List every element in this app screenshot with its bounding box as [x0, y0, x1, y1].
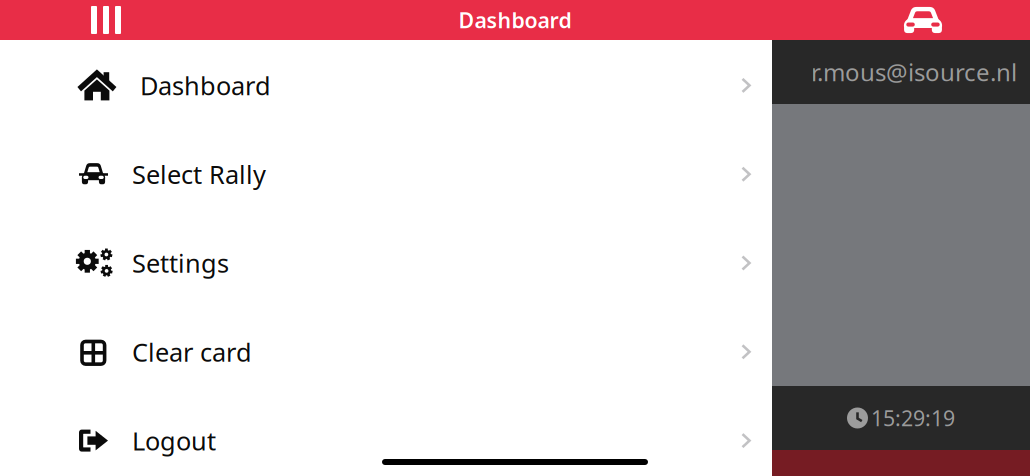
button[interactable]: Vehicle [890, 0, 956, 40]
staticText: Logout [132, 424, 216, 457]
staticText: Clear card [132, 335, 252, 369]
button[interactable]: Menu [75, 0, 137, 40]
staticText: Select Rally [132, 157, 266, 191]
staticText: Dashboard [458, 6, 571, 34]
staticText: 15:29:19 [871, 404, 955, 432]
staticText: Settings [132, 246, 229, 280]
button[interactable]: Settings [0, 219, 772, 307]
button[interactable]: Dashboard [0, 41, 772, 130]
button[interactable]: Clear card [0, 307, 772, 396]
staticText: Dashboard [140, 69, 271, 102]
button[interactable]: Logout [0, 396, 772, 476]
button[interactable]: Select Rally [0, 130, 772, 219]
staticText: r.mous@isource.nl [811, 56, 1017, 88]
